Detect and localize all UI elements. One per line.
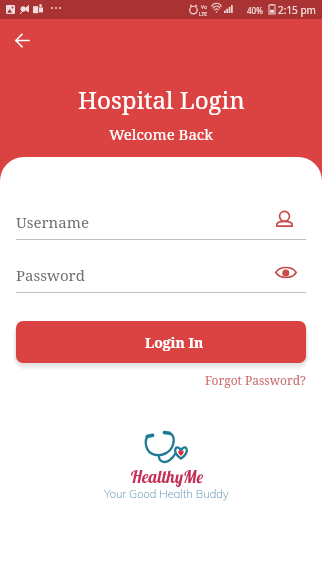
staticText: Password xyxy=(16,265,85,285)
button[interactable]: Forgot Password? xyxy=(205,372,306,388)
staticText: Vo xyxy=(201,4,207,11)
staticText: HealthyMe xyxy=(130,466,204,487)
button[interactable]: Show password xyxy=(268,256,300,288)
staticText: 40% xyxy=(247,5,263,16)
staticText: Forgot Password? xyxy=(205,372,306,388)
button[interactable]: Login In xyxy=(16,321,306,363)
staticText: Your Good Health Buddy xyxy=(104,487,229,501)
staticText: 2:15 pm xyxy=(278,3,316,17)
staticText: LTE xyxy=(199,11,208,18)
button[interactable]: Back xyxy=(10,28,35,53)
staticText: Login In xyxy=(145,333,204,352)
staticText: Username xyxy=(16,212,89,232)
staticText: Hospital Login xyxy=(78,83,245,116)
button[interactable]: Account xyxy=(268,203,300,235)
staticText: Welcome Back xyxy=(109,124,214,144)
